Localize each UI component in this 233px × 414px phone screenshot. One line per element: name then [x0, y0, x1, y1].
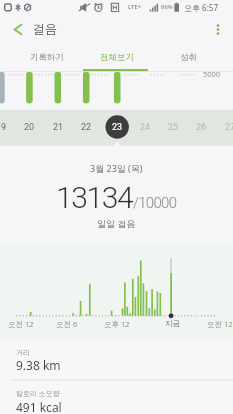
staticText: 24	[140, 122, 151, 133]
staticText: 성취	[180, 52, 197, 63]
staticText: 20	[24, 122, 35, 133]
staticText: 오후 12	[104, 319, 130, 329]
staticText: 13134	[56, 180, 133, 215]
staticText: 전체보기	[100, 52, 134, 63]
staticText: 오후 6:57	[184, 2, 218, 13]
staticText: 491 kcal	[16, 399, 62, 414]
staticText: 오전 6	[56, 319, 78, 329]
staticText: 칼로리 소모량	[16, 389, 60, 399]
staticText: 오전 12	[8, 319, 34, 329]
staticText: 19	[0, 122, 7, 133]
staticText: LTE+	[128, 3, 142, 11]
button[interactable]: 20	[17, 116, 41, 138]
staticText: 9.38 km	[16, 357, 61, 373]
button[interactable]: 23	[105, 116, 129, 138]
button[interactable]: 25	[161, 116, 185, 138]
staticText: 지금	[165, 319, 180, 328]
staticText: 26	[196, 122, 207, 133]
button[interactable]: 19	[0, 116, 13, 138]
button[interactable]: 성취	[153, 45, 223, 69]
button[interactable]: 27	[218, 116, 233, 138]
button[interactable]: Back	[3, 14, 33, 44]
staticText: 23	[112, 122, 123, 133]
staticText: 걸음	[33, 21, 57, 36]
staticText: 오전 12	[207, 319, 233, 329]
button[interactable]: More options	[203, 14, 233, 44]
staticText: 거리	[16, 348, 30, 357]
staticText: /10000	[133, 194, 177, 212]
staticText: 86%	[161, 3, 173, 11]
button[interactable]: 26	[189, 116, 213, 138]
staticText: 기록하기	[30, 52, 64, 63]
staticText: 3월 23일 (목)	[90, 162, 143, 174]
button[interactable]: 기록하기	[12, 45, 82, 69]
staticText: 22	[81, 122, 92, 133]
button[interactable]: 21	[46, 116, 70, 138]
staticText: 일일 걸음	[97, 217, 136, 229]
button[interactable]: 24	[133, 116, 157, 138]
staticText: 27	[225, 122, 233, 133]
staticText: 5000	[203, 69, 221, 79]
button[interactable]: 전체보기	[82, 45, 152, 69]
button[interactable]: 22	[74, 116, 98, 138]
staticText: 21	[53, 122, 64, 133]
staticText: 25	[168, 122, 179, 133]
